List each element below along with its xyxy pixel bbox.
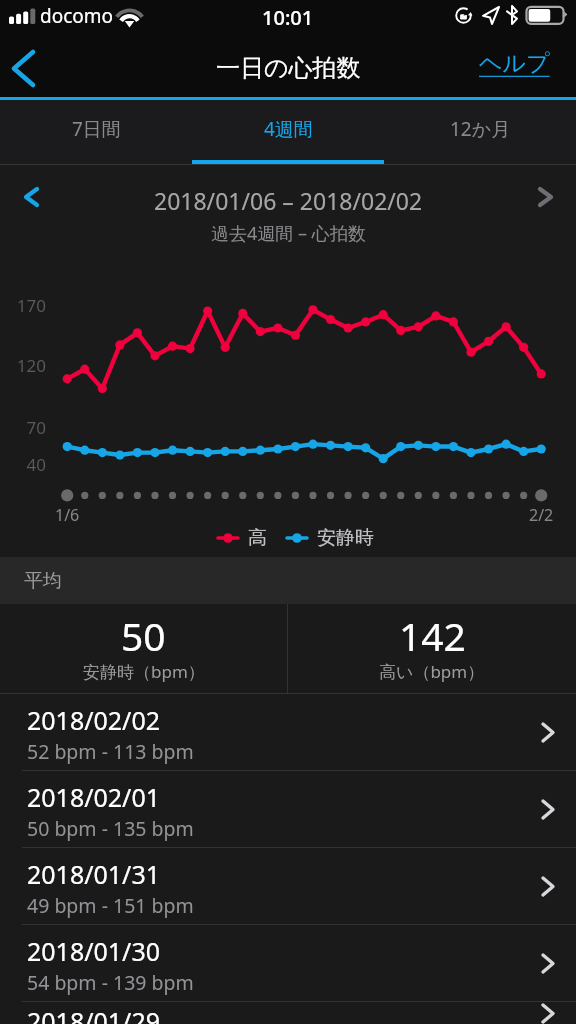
staticText: 49 bpm - 151 bpm — [27, 892, 194, 919]
button[interactable]: 4週間 — [192, 100, 384, 165]
button[interactable]: 7日間 — [0, 100, 192, 165]
staticText: 4週間 — [264, 116, 313, 142]
staticText: 40 — [0, 453, 46, 476]
staticText: 54 bpm - 139 bpm — [27, 969, 194, 996]
staticText: 2018/01/31 — [27, 857, 161, 891]
staticText: 120 — [0, 354, 46, 377]
staticText: 2018/01/30 — [27, 934, 161, 968]
staticText: 一日の心拍数 — [216, 53, 361, 83]
staticText: 過去4週間 – 心拍数 — [211, 221, 366, 246]
button[interactable]: 12か月 — [384, 100, 576, 165]
button[interactable]: 2018/01/29 — [0, 1002, 576, 1024]
button[interactable]: 2018/01/31 — [0, 848, 576, 924]
button[interactable]: 2018/02/02 — [0, 694, 576, 770]
staticText: 1/6 — [55, 504, 80, 526]
staticText: 高 — [248, 526, 267, 550]
button[interactable]: 142 — [288, 604, 576, 693]
staticText: 2018/02/01 — [27, 780, 161, 814]
staticText: 12か月 — [450, 116, 511, 142]
staticText: ヘルプ — [479, 49, 550, 78]
staticText: 2/2 — [529, 504, 554, 526]
staticText: 50 — [121, 609, 166, 662]
staticText: 安静時 — [317, 526, 374, 550]
staticText: 2018/01/06 – 2018/02/02 — [154, 185, 423, 216]
staticText: 52 bpm - 113 bpm — [27, 738, 194, 765]
button[interactable]: ヘルプ — [466, 40, 576, 97]
staticText: 2018/02/02 — [27, 703, 161, 737]
button[interactable]: Previous period — [0, 173, 50, 221]
staticText: docomo — [40, 3, 114, 29]
staticText: 高い（bpm） — [379, 660, 485, 683]
button[interactable]: 2018/01/30 — [0, 925, 576, 1001]
staticText: 50 bpm - 135 bpm — [27, 815, 194, 842]
staticText: 2018/01/29 — [27, 1004, 161, 1024]
button[interactable]: 50 — [0, 604, 287, 693]
staticText: 170 — [0, 294, 46, 317]
staticText: 安静時（bpm） — [83, 660, 205, 683]
staticText: 70 — [0, 416, 46, 439]
staticText: 平均 — [24, 569, 62, 593]
button[interactable]: Back — [0, 40, 46, 97]
button[interactable]: Next period — [526, 173, 576, 221]
staticText: 7日間 — [72, 116, 121, 142]
button[interactable]: 2018/02/01 — [0, 771, 576, 847]
staticText: 142 — [399, 609, 466, 662]
staticText: 10:01 — [262, 4, 314, 31]
